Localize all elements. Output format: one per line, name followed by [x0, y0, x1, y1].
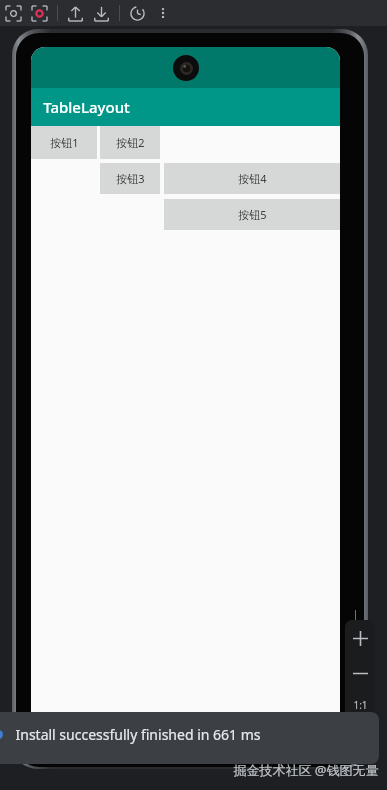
- staticText: Install successfully finished in 661 ms: [15, 725, 261, 744]
- staticText: TableLayout: [43, 97, 130, 117]
- staticText: 掘金技术社区 @钱图无量: [233, 761, 379, 779]
- button[interactable]: Record screen: [26, 0, 52, 26]
- staticText: 1:1: [353, 698, 368, 712]
- button[interactable]: 按钮5: [164, 199, 340, 230]
- button[interactable]: 按钮3: [100, 163, 160, 194]
- button[interactable]: TableLayout: [31, 88, 340, 126]
- button[interactable]: History: [124, 0, 150, 26]
- button[interactable]: Actual size: [345, 690, 375, 720]
- button[interactable]: Install successfully finished in 661 ms: [0, 712, 379, 764]
- button[interactable]: Download: [88, 0, 114, 26]
- button[interactable]: More options: [150, 0, 176, 26]
- staticText: 按钮3: [116, 171, 145, 186]
- staticText: 按钮2: [116, 135, 145, 150]
- button[interactable]: 按钮1: [31, 126, 97, 159]
- button[interactable]: Screenshot: [0, 0, 26, 26]
- button[interactable]: Zoom in: [345, 620, 375, 656]
- button[interactable]: Upload: [62, 0, 88, 26]
- staticText: 按钮1: [50, 135, 79, 150]
- staticText: 按钮5: [238, 207, 267, 222]
- button[interactable]: Zoom out: [345, 656, 375, 690]
- button[interactable]: 按钮4: [164, 163, 340, 194]
- button[interactable]: 按钮2: [100, 126, 160, 159]
- staticText: 按钮4: [238, 171, 267, 186]
